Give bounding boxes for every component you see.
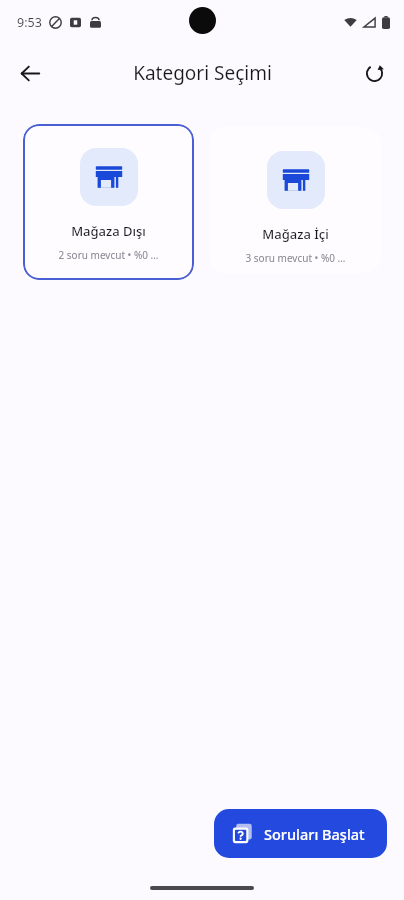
button[interactable]: Mağaza Dışı bbox=[23, 124, 194, 280]
staticText: Mağaza İçi bbox=[262, 225, 329, 243]
staticText: 9:53 bbox=[17, 14, 42, 31]
staticText: Mağaza Dışı bbox=[71, 222, 146, 240]
staticText: Soruları Başlat bbox=[264, 824, 365, 844]
button[interactable]: Back bbox=[8, 51, 52, 95]
button[interactable]: Refresh bbox=[352, 51, 396, 95]
staticText: Kategori Seçimi bbox=[133, 60, 272, 86]
button[interactable]: Soruları Başlat bbox=[214, 809, 387, 858]
staticText: 3 soru mevcut • %0 … bbox=[245, 251, 346, 265]
button[interactable]: Mağaza İçi bbox=[210, 127, 381, 273]
staticText: 2 soru mevcut • %0 … bbox=[58, 248, 159, 262]
